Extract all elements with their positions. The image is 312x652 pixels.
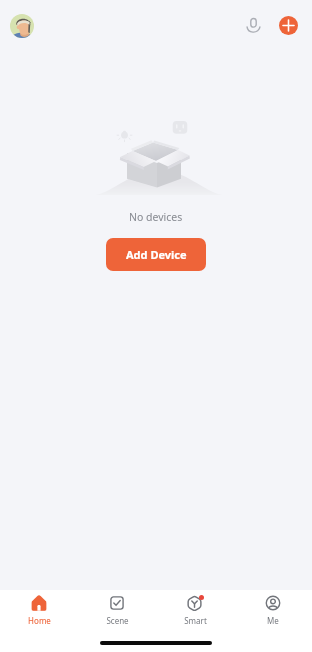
staticText: Home xyxy=(28,615,51,626)
button[interactable]: Home xyxy=(0,595,78,628)
staticText: No devices xyxy=(129,210,183,224)
staticText: Add Device xyxy=(126,247,187,262)
button[interactable]: Add device xyxy=(279,16,298,35)
staticText: Scene xyxy=(106,615,129,626)
button[interactable]: Scene xyxy=(78,595,156,628)
button[interactable]: Voice search xyxy=(239,11,267,39)
staticText: Me xyxy=(267,615,279,626)
button[interactable]: Me xyxy=(234,595,312,628)
button[interactable]: Smart xyxy=(156,595,234,628)
staticText: Smart xyxy=(184,615,207,626)
button[interactable]: Profile xyxy=(10,14,34,38)
button[interactable]: Add Device xyxy=(106,238,206,271)
